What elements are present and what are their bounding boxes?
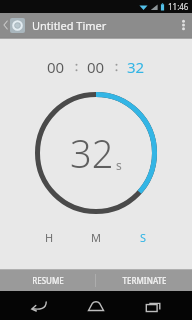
button[interactable]: Home (78, 291, 114, 320)
staticText: 32 (127, 57, 145, 77)
staticText: Untitled Timer (32, 18, 107, 33)
staticText: RESUME (32, 275, 64, 286)
staticText: M (91, 230, 101, 245)
button[interactable]: Timer progress 32 seconds (34, 91, 158, 215)
staticText: 00 (87, 57, 105, 77)
button[interactable]: H (39, 227, 59, 247)
staticText: H (45, 230, 54, 245)
button[interactable]: Back (21, 291, 57, 320)
staticText: 32 (70, 127, 114, 179)
staticText: TERMINATE (122, 275, 167, 286)
button[interactable]: M (86, 227, 106, 247)
staticText: s (116, 157, 122, 173)
button[interactable]: S (133, 227, 153, 247)
button[interactable]: Recent apps (135, 291, 171, 320)
button[interactable]: More options (174, 13, 192, 37)
staticText: S (140, 230, 147, 245)
button[interactable]: TERMINATE (96, 270, 192, 291)
staticText: 00 (47, 57, 65, 77)
button[interactable]: Navigate up (0, 13, 27, 37)
button[interactable]: RESUME (0, 270, 95, 291)
staticText: 11:46 (168, 1, 189, 12)
